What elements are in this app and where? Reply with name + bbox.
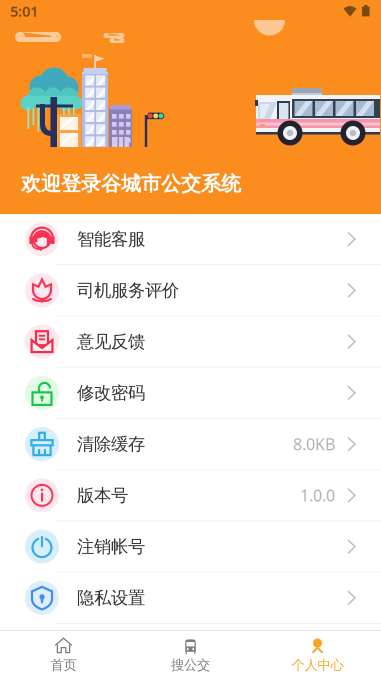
button[interactable]: 个人中心 xyxy=(254,632,381,677)
staticText: 意见反馈 xyxy=(77,331,145,352)
button[interactable]: 版本号 xyxy=(0,470,381,521)
staticText: 个人中心 xyxy=(291,657,343,673)
staticText: 1.0.0 xyxy=(300,485,335,506)
button[interactable]: 注销帐号 xyxy=(0,521,381,573)
staticText: 8.0KB xyxy=(293,433,335,455)
staticText: 版本号 xyxy=(77,485,128,506)
button[interactable]: 首页 xyxy=(0,632,127,677)
staticText: 司机服务评价 xyxy=(77,280,179,301)
staticText: 隐私设置 xyxy=(77,587,145,608)
staticText: 欢迎登录谷城市公交系统 xyxy=(21,171,241,196)
button[interactable]: 修改密码 xyxy=(0,368,381,419)
staticText: 5:01 xyxy=(10,1,38,21)
staticText: 修改密码 xyxy=(77,382,145,403)
button[interactable]: 隐私设置 xyxy=(0,573,381,624)
staticText: 注销帐号 xyxy=(77,536,145,557)
button[interactable]: 司机服务评价 xyxy=(0,265,381,316)
staticText: 清除缓存 xyxy=(77,433,145,455)
staticText: 搜公交 xyxy=(171,657,210,673)
button[interactable]: 智能客服 xyxy=(0,214,381,265)
button[interactable]: 搜公交 xyxy=(127,632,254,677)
button[interactable]: 意见反馈 xyxy=(0,316,381,368)
staticText: 智能客服 xyxy=(77,228,145,250)
button[interactable]: 清除缓存 xyxy=(0,419,381,470)
staticText: 首页 xyxy=(50,657,76,673)
